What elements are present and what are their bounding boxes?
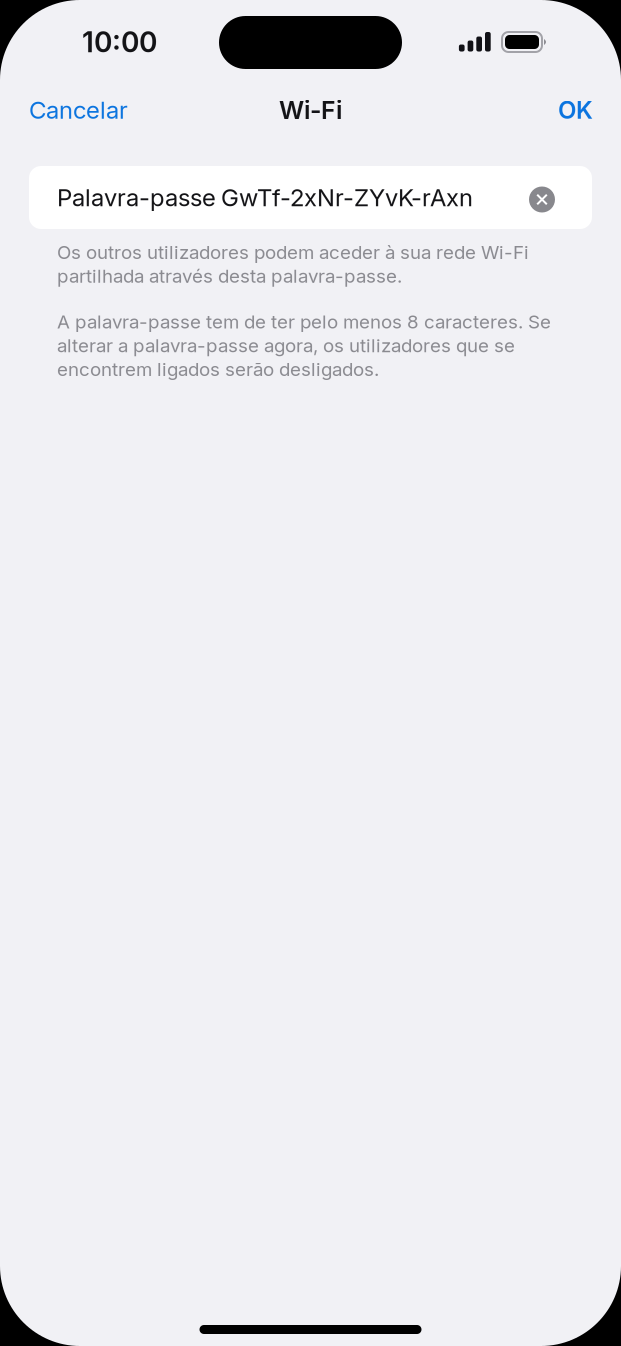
button[interactable]: Palavra-passe [29,166,592,229]
button[interactable]: Cancelar [13,86,144,137]
staticText: A palavra-passe tem de ter pelo menos 8 … [57,310,551,381]
staticText: Palavra-passe [57,183,216,212]
staticText: Wi-Fi [279,95,342,125]
staticText: GwTf-2xNr-ZYvK-rAxn [221,183,473,212]
button[interactable]: Apagar palavra-passe [520,177,564,221]
staticText: Cancelar [29,95,128,124]
staticText: Os outros utilizadores podem aceder à su… [57,241,529,287]
staticText: 10:00 [82,25,157,59]
button[interactable]: OK [542,86,609,137]
staticText: OK [558,95,593,124]
